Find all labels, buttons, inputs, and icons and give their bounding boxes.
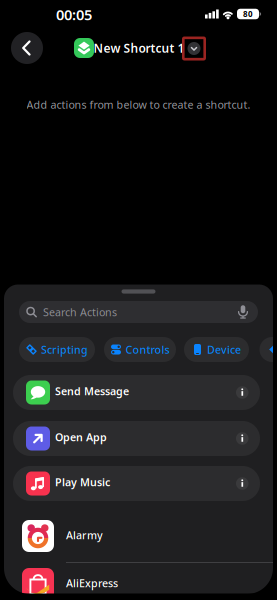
button[interactable]: Shortcut options: [187, 42, 200, 55]
button[interactable]: Media: [259, 337, 277, 362]
staticText: Open App: [55, 430, 107, 444]
staticText: 80: [243, 9, 253, 19]
button[interactable]: Action details: [236, 386, 248, 399]
button[interactable]: Controls: [104, 337, 176, 362]
staticText: New Shortcut 1: [93, 40, 184, 56]
staticText: Search Actions: [43, 305, 117, 319]
staticText: 00:05: [56, 5, 92, 24]
staticText: Scripting: [41, 342, 88, 357]
button[interactable]: Search Actions: [19, 301, 258, 323]
button[interactable]: Scripting: [19, 337, 95, 362]
button[interactable]: Send Message: [13, 375, 260, 410]
button[interactable]: Device: [184, 337, 249, 362]
button[interactable]: Action details: [236, 432, 248, 445]
button[interactable]: Play Music: [13, 466, 260, 501]
button[interactable]: AliExpress: [4, 562, 273, 600]
button[interactable]: Action details: [236, 477, 248, 490]
staticText: Play Music: [55, 475, 110, 489]
staticText: Alarmy: [66, 528, 103, 542]
staticText: Controls: [125, 342, 169, 357]
staticText: Add actions from below to create a short…: [26, 97, 250, 112]
button[interactable]: Back: [11, 32, 43, 64]
staticText: AliExpress: [66, 576, 118, 590]
staticText: Device: [207, 342, 241, 357]
button[interactable]: Open App: [13, 421, 260, 456]
staticText: Send Message: [55, 384, 129, 398]
button[interactable]: Alarmy: [4, 514, 273, 558]
button[interactable]: Dictation: [238, 305, 248, 319]
